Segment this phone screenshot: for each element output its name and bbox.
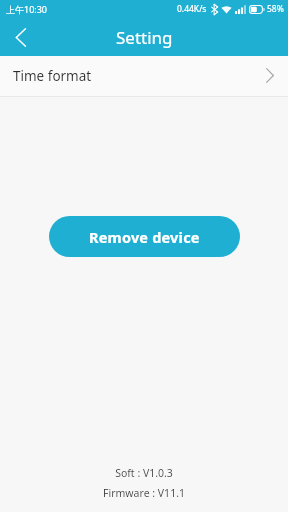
- staticText: Firmware : V11.1: [103, 486, 185, 500]
- staticText: Remove device: [89, 227, 200, 247]
- staticText: Soft : V1.0.3: [115, 466, 173, 480]
- staticText: Setting: [116, 26, 173, 49]
- button[interactable]: Back: [0, 18, 40, 56]
- staticText: 上午10:30: [6, 3, 48, 15]
- button[interactable]: Time format: [0, 56, 288, 96]
- staticText: Time format: [13, 67, 92, 85]
- staticText: 58%: [267, 3, 284, 15]
- button[interactable]: Remove device: [49, 216, 240, 257]
- staticText: 0.44K/s: [177, 3, 207, 15]
